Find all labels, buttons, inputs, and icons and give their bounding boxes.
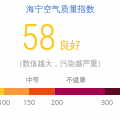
staticText: 200 (51, 98, 64, 108)
staticText: 58 (21, 17, 56, 59)
staticText: （数值越大，污染越严重） (15, 59, 105, 68)
staticText: 良好 (59, 38, 81, 52)
staticText: 海宁空气质量指数 (26, 4, 95, 15)
staticText: 中等 (26, 76, 40, 84)
staticText: 不健康 (66, 76, 86, 84)
staticText: 300 (101, 98, 114, 108)
staticText: 150 (23, 98, 36, 108)
staticText: 100 (0, 98, 11, 108)
